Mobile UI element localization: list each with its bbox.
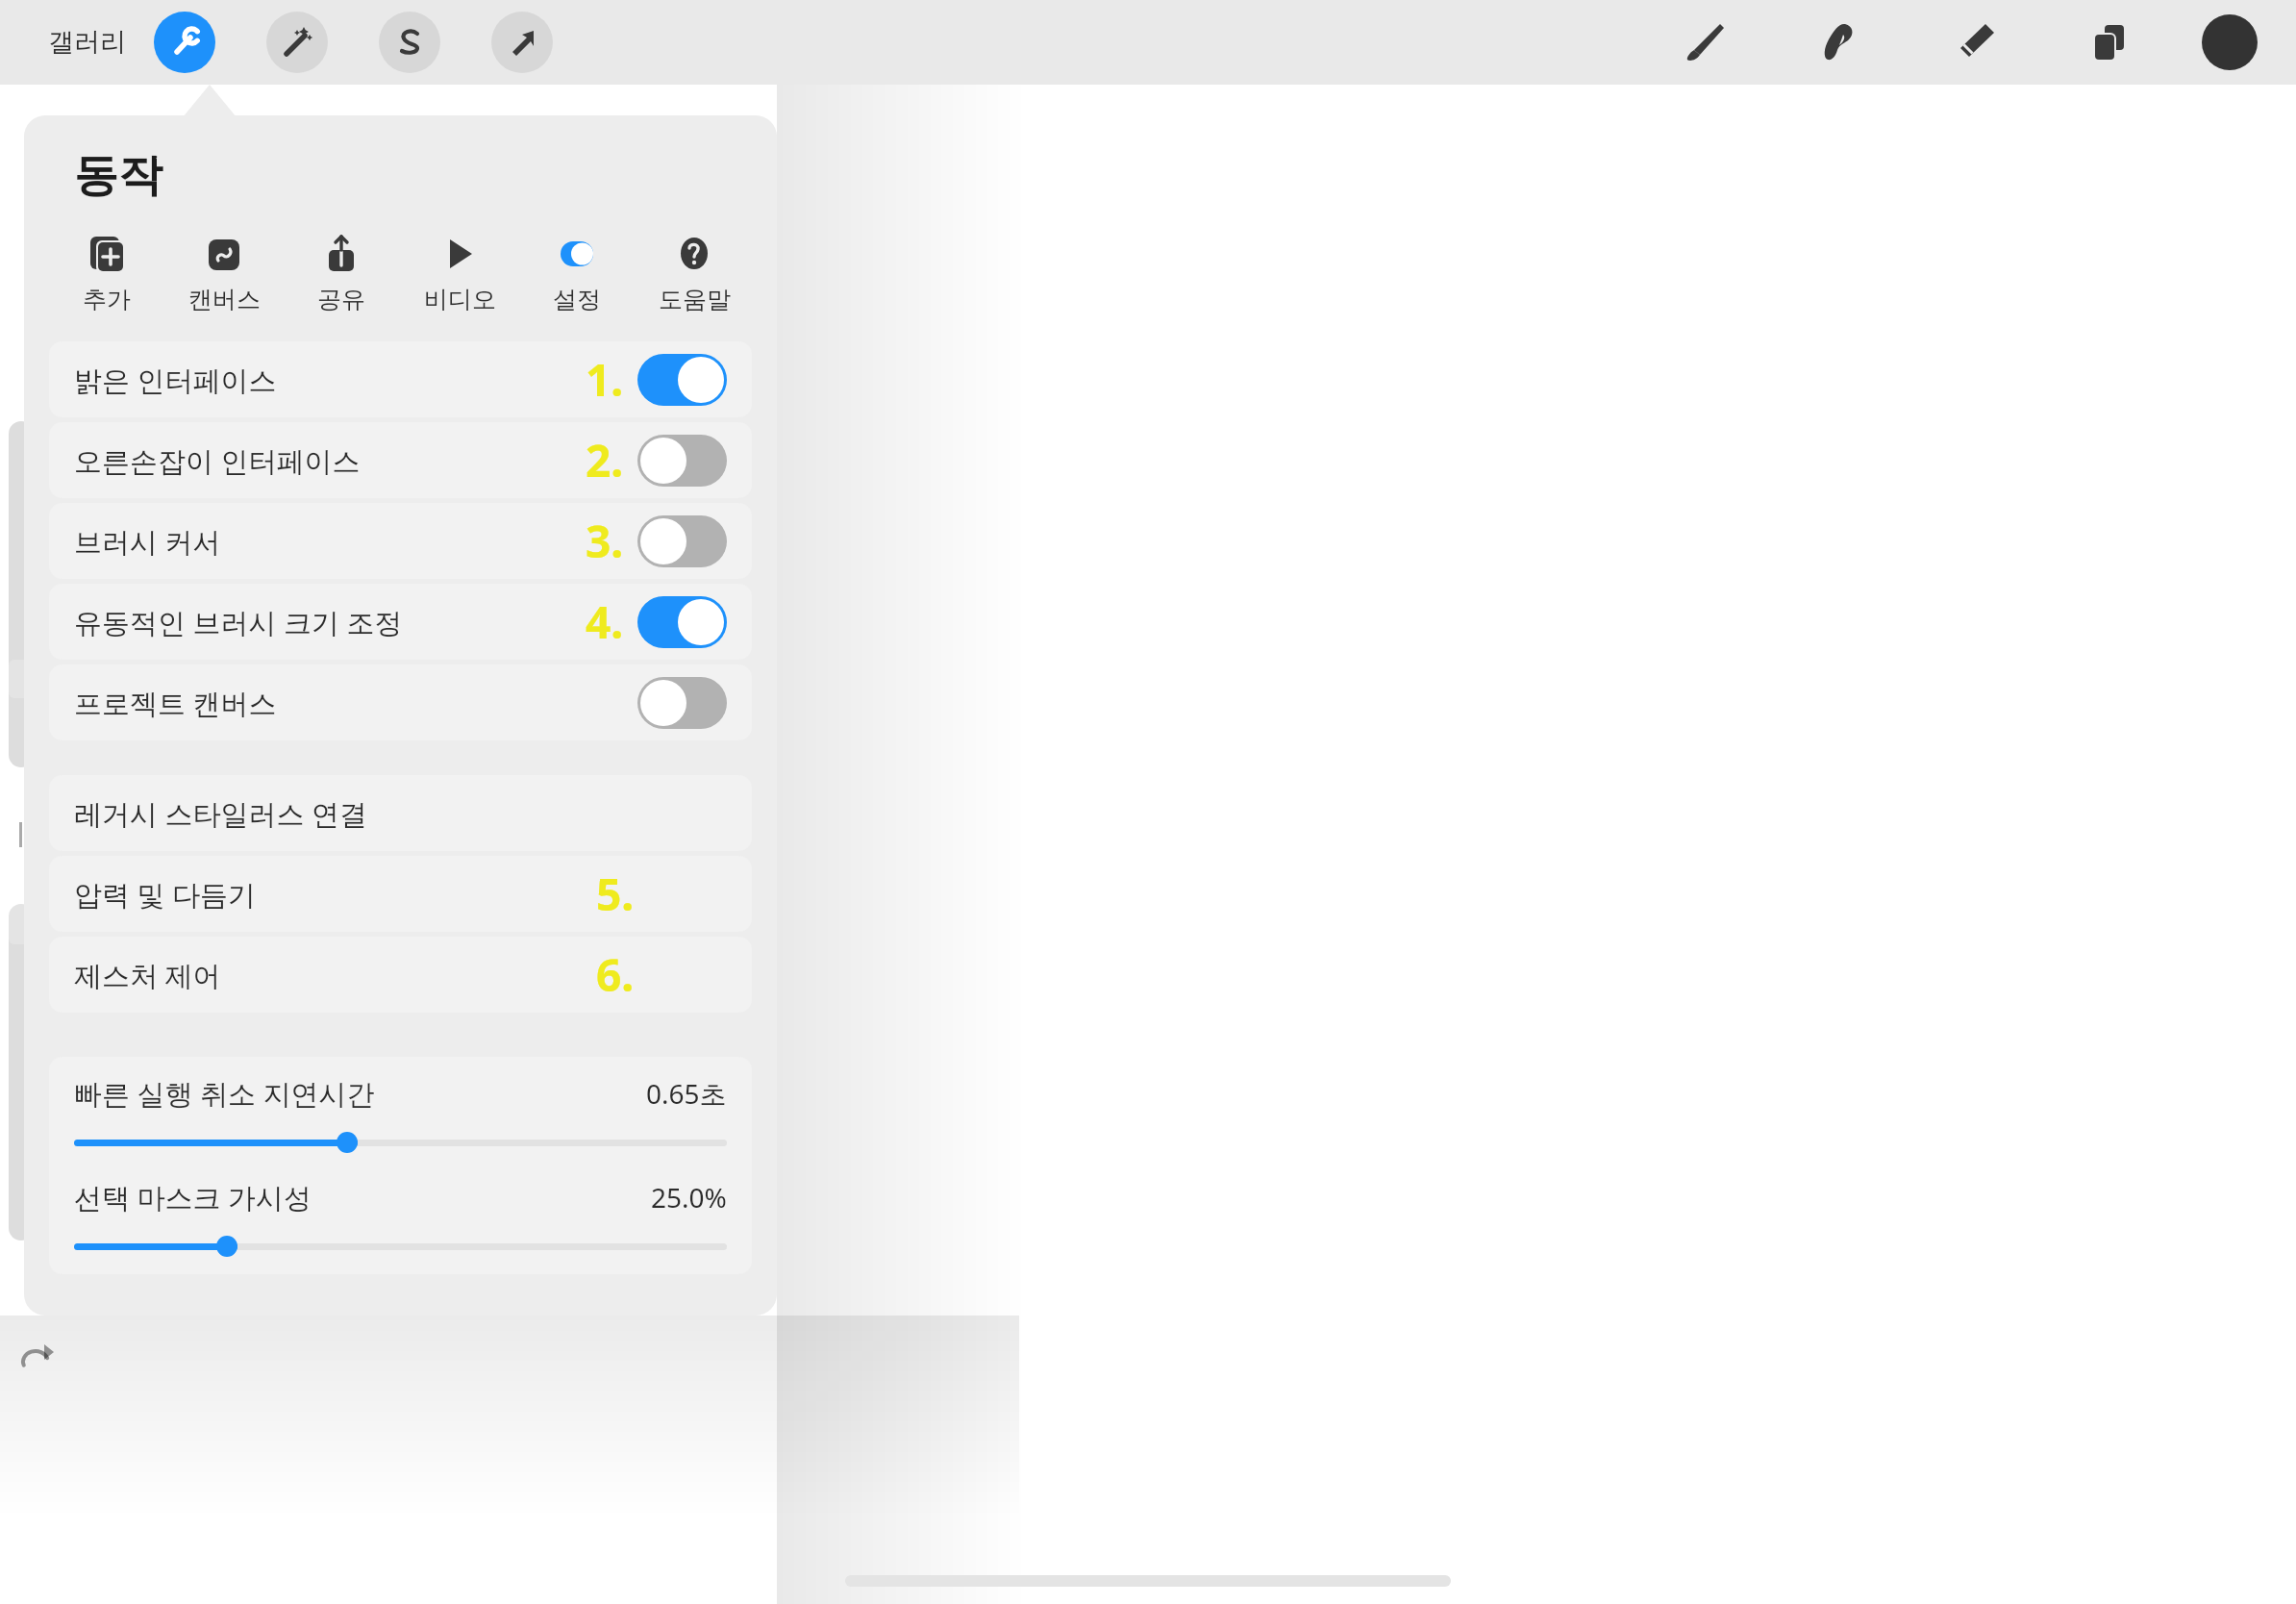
button[interactable]: Erase [1942,10,2008,75]
button[interactable]: Redo [8,1332,65,1390]
button[interactable] [9,421,34,767]
staticText: 6. [596,944,635,1005]
button[interactable]: Selection [379,12,440,73]
button[interactable]: 밝은 인터페이스 [49,341,752,417]
staticText: 추가 [83,285,131,314]
staticText: 캔버스 [188,285,261,314]
button[interactable]: 도움말 [644,231,744,314]
staticText: 공유 [317,285,365,314]
staticText: 비디오 [424,285,496,314]
button[interactable]: 오른손잡이 인터페이스 [49,422,752,498]
button[interactable] [637,354,727,406]
button[interactable]: Smudge [1808,10,1873,75]
staticText: 레거시 스타일러스 연결 [74,794,368,833]
button[interactable]: 브러시 커서 [49,503,752,579]
staticText: 도움말 [659,285,731,314]
button[interactable]: 압력 및 다듬기 [49,856,752,932]
staticText: 설정 [553,285,601,314]
button[interactable]: 유동적인 브러시 크기 조정 [49,584,752,660]
button[interactable]: 갤러리 [48,0,126,85]
button[interactable]: Transform [491,12,553,73]
staticText: 동작 [74,148,162,204]
button[interactable] [9,904,34,1241]
staticText: 25.0% [651,1179,727,1216]
button[interactable]: 레거시 스타일러스 연결 [49,775,752,851]
staticText: 오른손잡이 인터페이스 [74,441,361,480]
staticText: 제스처 제어 [74,956,221,994]
button[interactable] [637,435,727,487]
button[interactable]: Adjustments [266,12,328,73]
staticText: 갤러리 [48,26,126,59]
staticText: 1. [586,349,624,410]
button[interactable]: 빠른 실행 취소 지연시간 [74,1074,727,1153]
button[interactable]: 공유 [291,231,391,314]
staticText: 선택 마스크 가시성 [74,1178,312,1216]
staticText: 빠른 실행 취소 지연시간 [74,1074,375,1113]
staticText: 4. [586,591,624,652]
button[interactable]: 선택 마스크 가시성 [74,1178,727,1257]
button[interactable] [637,515,727,567]
button[interactable]: Layers [2077,10,2142,75]
staticText: 압력 및 다듬기 [74,875,257,914]
staticText: 브러시 커서 [74,522,221,561]
button[interactable] [637,677,727,729]
button[interactable]: 추가 [57,231,157,314]
staticText: 3. [586,511,624,571]
button[interactable]: 제스처 제어 [49,937,752,1013]
button[interactable]: Paint [1673,10,1738,75]
button[interactable]: 프로젝트 캔버스 [49,664,752,740]
button[interactable]: 설정 [527,231,627,314]
staticText: 5. [596,864,635,924]
staticText: 밝은 인터페이스 [74,361,277,399]
staticText: 프로젝트 캔버스 [74,684,277,722]
staticText: 2. [586,430,624,490]
button[interactable]: 캔버스 [174,231,274,314]
button[interactable]: Color [2202,14,2258,70]
staticText: 유동적인 브러시 크기 조정 [74,603,403,641]
staticText: 0.65초 [646,1075,727,1112]
button[interactable] [637,596,727,648]
button[interactable]: 비디오 [410,231,510,314]
button[interactable]: Actions [154,12,215,73]
